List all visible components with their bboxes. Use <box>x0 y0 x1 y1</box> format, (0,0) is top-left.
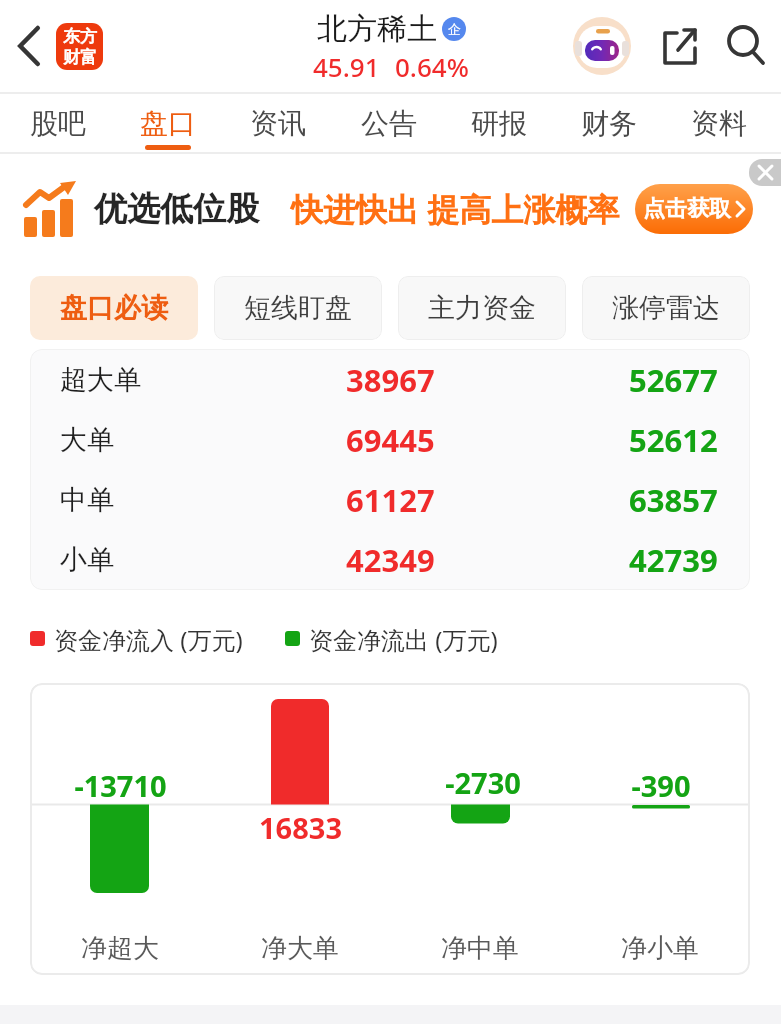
staticText: 涨停雷达 <box>612 291 720 325</box>
button[interactable] <box>660 26 698 66</box>
button[interactable]: 研报 <box>471 94 527 152</box>
staticText: 点击获取 <box>643 195 731 223</box>
button[interactable]: 点击获取 <box>635 184 753 234</box>
staticText: 63857 <box>629 479 718 521</box>
button[interactable]: 资料 <box>691 94 747 152</box>
staticText: 财务 <box>581 106 637 141</box>
button[interactable]: 股吧 <box>30 94 86 152</box>
staticText: 净大单 <box>261 932 339 965</box>
staticText: 资金净流出 (万元) <box>309 623 498 653</box>
staticText: 42349 <box>346 539 435 581</box>
staticText: 北方稀土 <box>317 10 437 48</box>
button[interactable] <box>12 22 48 70</box>
staticText: 企 <box>448 21 461 37</box>
staticText: 中单 <box>60 483 114 517</box>
button[interactable]: 优选低位股 <box>0 154 781 256</box>
button[interactable]: 中单 <box>30 470 750 530</box>
staticText: 69445 <box>346 419 435 461</box>
staticText: 0.64% <box>395 49 469 84</box>
staticText: 资金净流入 (万元) <box>54 623 243 653</box>
staticText: 股吧 <box>30 106 86 141</box>
button[interactable]: 盘口 <box>140 94 196 152</box>
staticText: 资讯 <box>250 106 306 141</box>
staticText: -390 <box>631 766 691 804</box>
staticText: 超大单 <box>60 363 141 397</box>
staticText: 38967 <box>346 359 435 401</box>
staticText: 公告 <box>361 106 417 141</box>
staticText: 短线盯盘 <box>244 291 352 325</box>
staticText: 研报 <box>471 106 527 141</box>
button[interactable]: 财务 <box>581 94 637 152</box>
staticText: 盘口必读 <box>60 291 168 325</box>
staticText: 45.91 <box>313 49 380 84</box>
staticText: 盘口 <box>140 106 196 141</box>
button[interactable]: 公告 <box>361 94 417 152</box>
staticText: 52677 <box>629 359 718 401</box>
button[interactable]: 盘口必读 <box>30 276 198 340</box>
staticText: 财富 <box>63 47 97 68</box>
staticText: -13710 <box>74 766 167 804</box>
staticText: 优选低位股 <box>94 188 259 230</box>
staticText: 净超大 <box>81 932 159 965</box>
staticText: 52612 <box>629 419 718 461</box>
button[interactable]: 超大单 <box>30 349 750 410</box>
button[interactable] <box>749 159 781 186</box>
button[interactable]: 主力资金 <box>398 276 566 340</box>
staticText: -2730 <box>445 763 521 801</box>
staticText: 资料 <box>691 106 747 141</box>
button[interactable]: 资讯 <box>250 94 306 152</box>
staticText: 61127 <box>346 479 435 521</box>
staticText: 净中单 <box>441 932 519 965</box>
staticText: 16833 <box>259 808 342 846</box>
staticText: 主力资金 <box>428 291 536 325</box>
button[interactable]: 小单 <box>30 530 750 590</box>
staticText: 小单 <box>60 543 114 577</box>
button[interactable]: 短线盯盘 <box>214 276 382 340</box>
button[interactable]: 涨停雷达 <box>582 276 750 340</box>
staticText: 净小单 <box>621 932 699 965</box>
button[interactable] <box>726 26 764 66</box>
staticText: 大单 <box>60 423 114 457</box>
button[interactable] <box>573 17 631 75</box>
staticText: 东方 <box>63 26 97 47</box>
button[interactable]: 大单 <box>30 410 750 470</box>
button[interactable]: 东方 <box>56 23 103 70</box>
staticText: 快进快出 提高上涨概率 <box>291 187 620 231</box>
staticText: 42739 <box>629 539 718 581</box>
